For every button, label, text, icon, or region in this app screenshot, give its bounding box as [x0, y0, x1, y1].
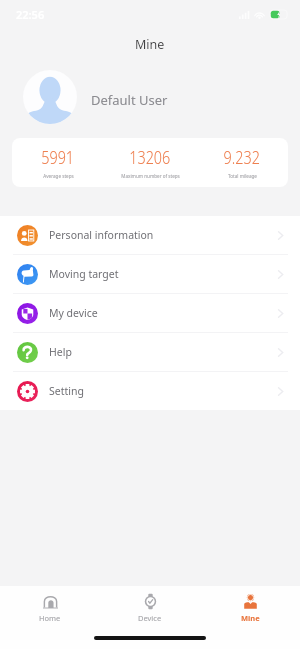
staticText: My device [49, 306, 98, 320]
staticText: Personal information [49, 228, 154, 242]
button[interactable]: Setting [0, 372, 300, 410]
button[interactable]: Personal information [0, 216, 300, 254]
button[interactable]: My device [0, 294, 300, 332]
button[interactable]: Moving target [0, 255, 300, 293]
button[interactable]: Mine [200, 586, 300, 626]
staticText: Maximum number of steps [121, 173, 180, 179]
button[interactable]: Help [0, 333, 300, 371]
staticText: 13206 [129, 145, 171, 170]
staticText: Help [49, 345, 72, 359]
staticText: 5991 [41, 145, 75, 170]
button[interactable]: Default User [0, 64, 300, 130]
staticText: 9.232 [224, 145, 260, 170]
button[interactable]: Device [100, 586, 200, 626]
staticText: Mine [241, 613, 260, 623]
staticText: Average steps [43, 173, 74, 179]
staticText: Device [138, 613, 162, 623]
staticText: Home [39, 613, 61, 623]
staticText: Total mileage [228, 173, 257, 179]
staticText: Mine [135, 36, 165, 53]
staticText: Moving target [49, 267, 119, 281]
button[interactable]: Home [0, 586, 100, 626]
staticText: 22:56 [16, 7, 45, 22]
staticText: Setting [49, 384, 84, 398]
staticText: Default User [91, 91, 168, 109]
